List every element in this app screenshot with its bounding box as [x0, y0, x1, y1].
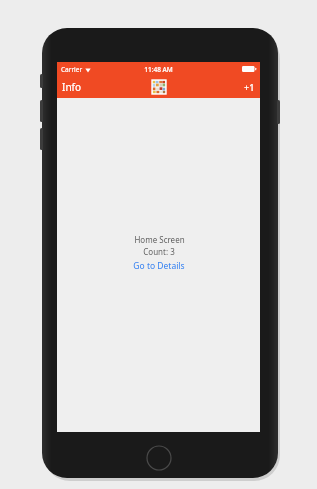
other: Power: [277, 100, 280, 124]
staticText: +1: [244, 81, 255, 93]
button[interactable]: Home: [146, 445, 172, 471]
staticText: 11:48 AM: [144, 65, 173, 74]
button[interactable]: Logo: [152, 80, 166, 94]
staticText: Go to Details: [133, 260, 185, 272]
staticText: Count: 3: [143, 246, 175, 257]
staticText: Info: [62, 80, 82, 94]
button[interactable]: Info: [62, 76, 82, 98]
other: Volume up: [40, 100, 43, 122]
button[interactable]: +1: [244, 76, 255, 98]
button[interactable]: Go to Details: [133, 260, 185, 272]
staticText: Carrier: [61, 65, 83, 74]
other: Volume down: [40, 128, 43, 150]
staticText: Home Screen: [134, 234, 185, 245]
other: Mute switch: [40, 74, 43, 88]
